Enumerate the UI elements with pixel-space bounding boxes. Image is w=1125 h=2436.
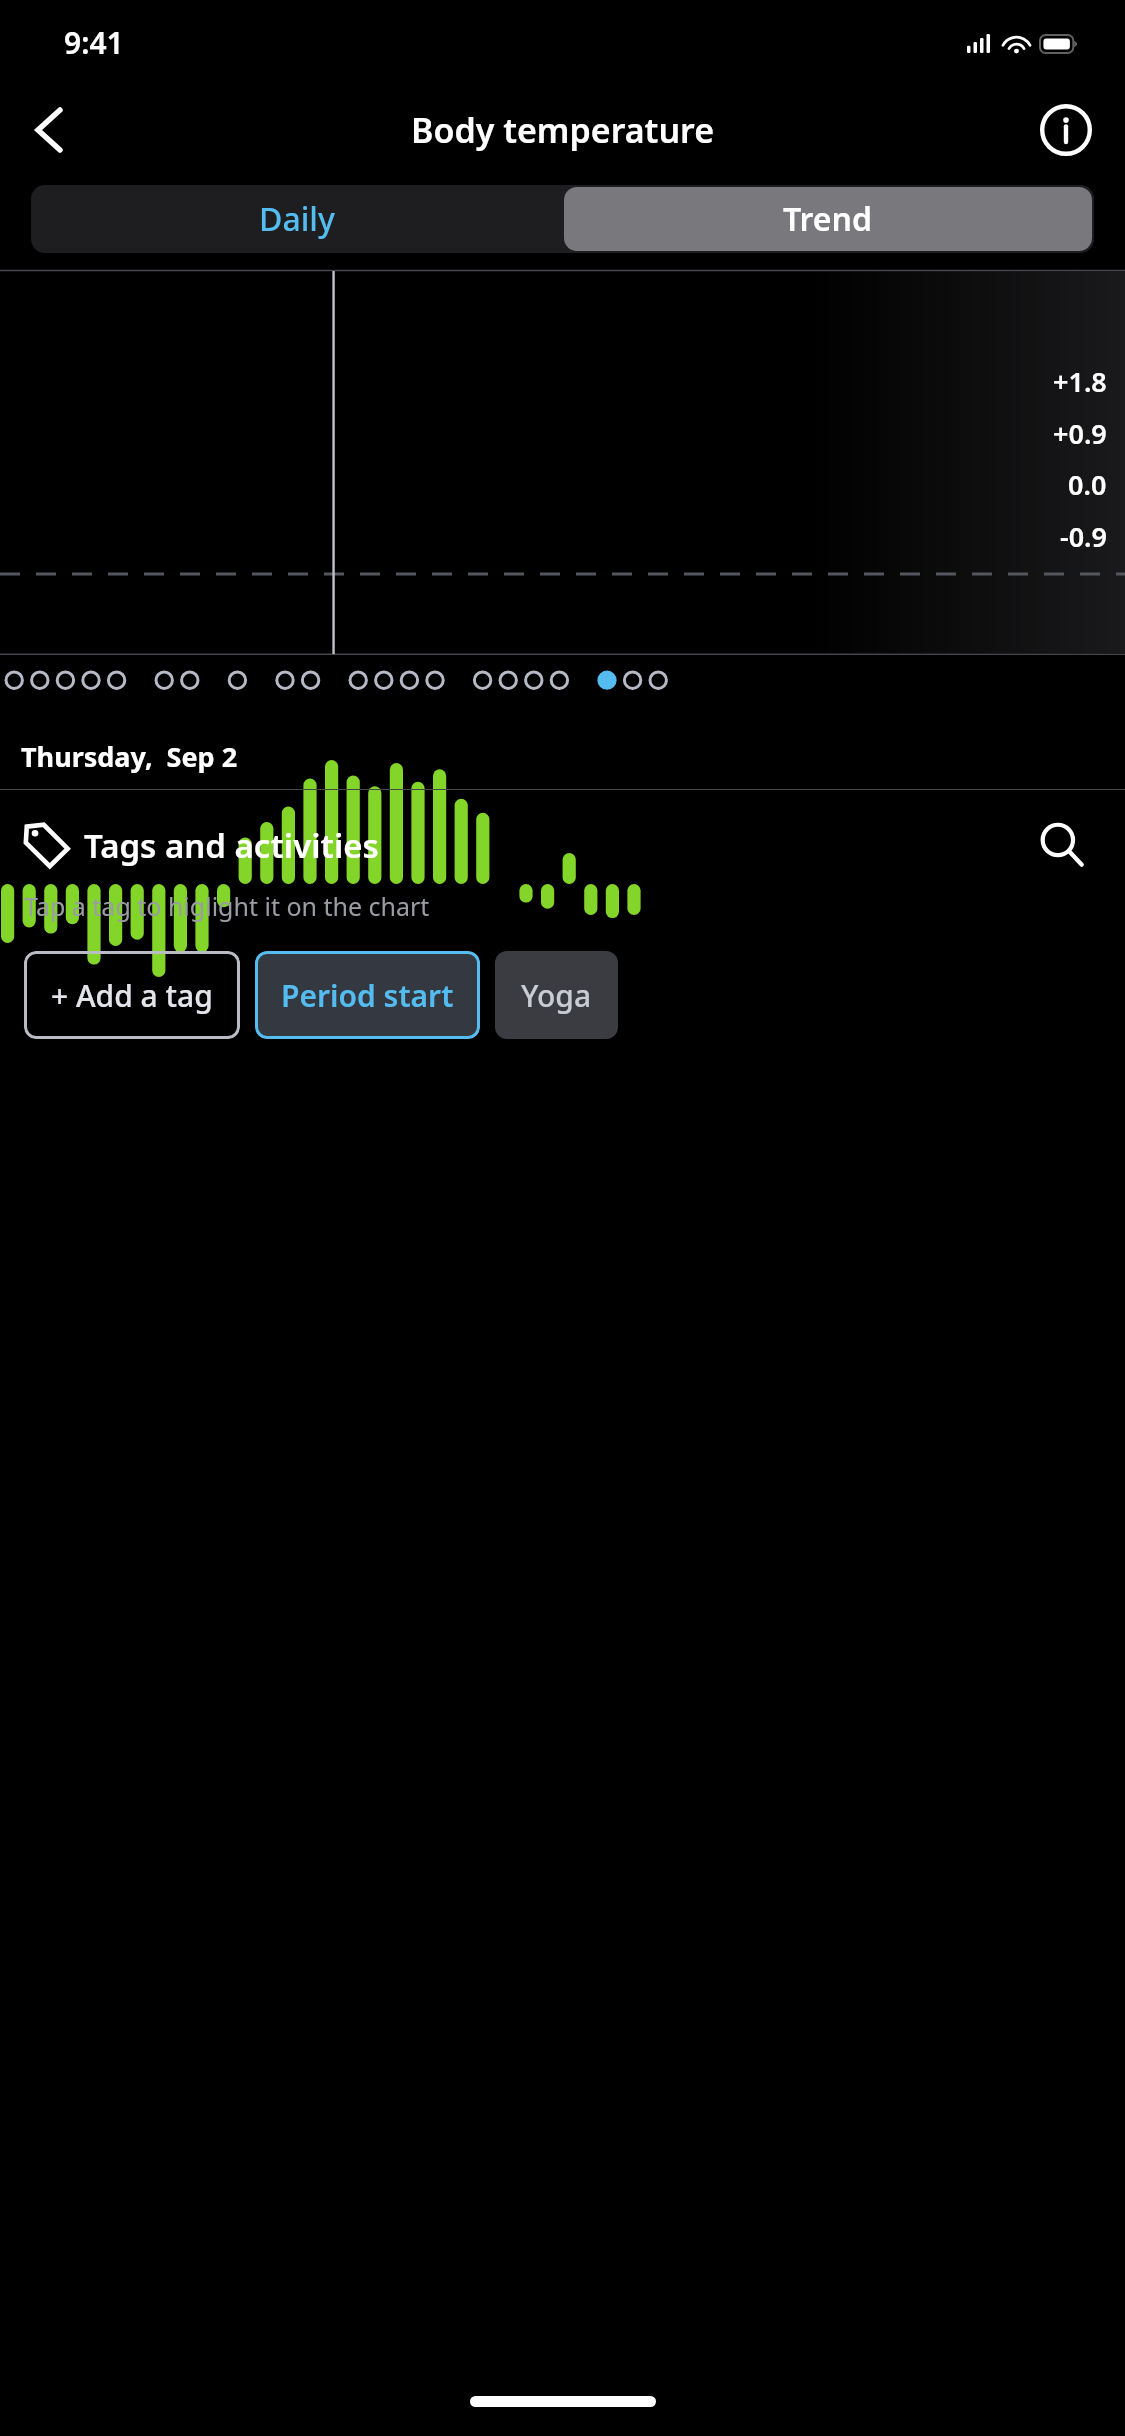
staticText: Tap a tag to higlight it on the chart	[24, 889, 430, 923]
staticText: Thursday, Sep 2	[21, 738, 238, 775]
staticText: Body temperature	[411, 107, 715, 153]
button[interactable]: Trend	[564, 187, 1092, 251]
button[interactable]: Search	[1029, 812, 1095, 878]
staticText: Period start	[281, 975, 454, 1016]
staticText: Trend	[783, 197, 873, 241]
button[interactable]: Info	[1035, 99, 1097, 161]
staticText: 9:41	[64, 22, 124, 63]
button[interactable]: Yoga	[495, 951, 618, 1039]
staticText: + Add a tag	[51, 975, 213, 1016]
staticText: Daily	[259, 197, 335, 241]
button[interactable]: + Add a tag	[24, 951, 240, 1039]
button[interactable]: Period start	[255, 951, 480, 1039]
button[interactable]: Daily	[31, 185, 562, 253]
button[interactable]: Back	[16, 97, 82, 163]
staticText: 0.0	[1068, 466, 1107, 503]
staticText: -0.9	[1060, 518, 1107, 555]
staticText: Yoga	[521, 975, 592, 1016]
staticText: +1.8	[1053, 363, 1107, 400]
staticText: +0.9	[1053, 415, 1107, 452]
staticText: Tags and activities	[84, 823, 379, 868]
